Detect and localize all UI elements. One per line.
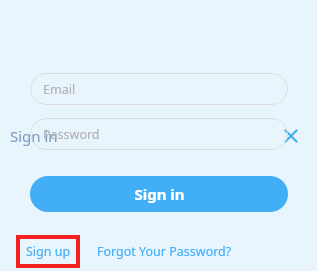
button[interactable]: Close	[279, 124, 303, 148]
staticText: Sign up	[26, 243, 71, 260]
button[interactable]: Sign in	[30, 176, 288, 212]
staticText: Email	[43, 81, 76, 98]
button[interactable]: Email	[30, 73, 288, 105]
button[interactable]: Sign up	[20, 239, 76, 264]
staticText: Forgot Your Password?	[97, 243, 232, 260]
staticText: Password	[43, 126, 100, 143]
staticText: Sign in	[134, 184, 185, 204]
button[interactable]: Password	[30, 118, 288, 150]
staticText: Sign in	[10, 126, 58, 146]
button[interactable]: Forgot Your Password?	[95, 239, 234, 264]
